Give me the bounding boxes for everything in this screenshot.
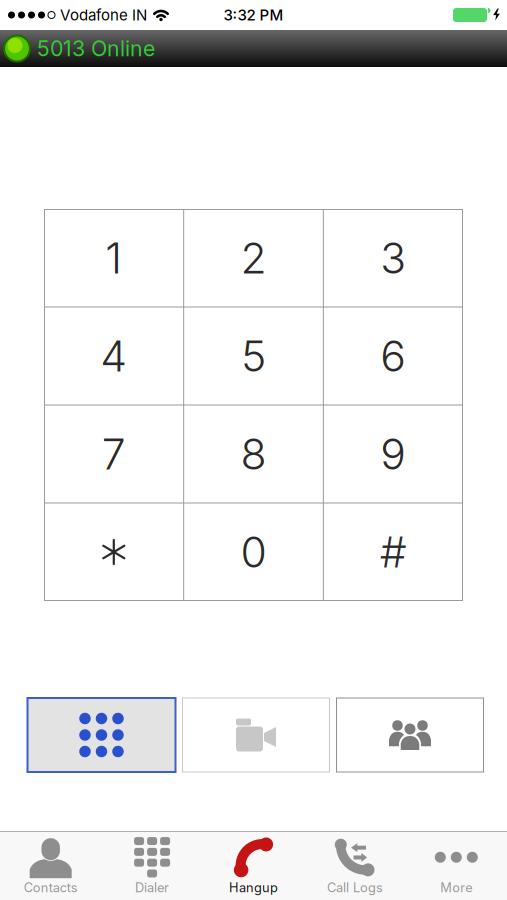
staticText: Hangup bbox=[229, 880, 278, 895]
staticText: 3:32 PM bbox=[223, 6, 283, 24]
button[interactable]: 9 bbox=[323, 405, 463, 503]
button[interactable]: 0 bbox=[184, 503, 323, 601]
staticText: 3 bbox=[380, 232, 406, 284]
button[interactable]: 8 bbox=[184, 405, 323, 503]
staticText: 1 bbox=[105, 232, 122, 284]
staticText: 2 bbox=[240, 232, 266, 284]
staticText: 9 bbox=[380, 428, 406, 480]
button[interactable]: Dialpad bbox=[27, 698, 175, 772]
staticText: Contacts bbox=[24, 880, 78, 895]
button[interactable]: Dialer bbox=[101, 832, 203, 900]
button[interactable]: Video call bbox=[182, 698, 329, 772]
button[interactable]: 6 bbox=[323, 307, 463, 405]
button[interactable]: 4 bbox=[44, 307, 184, 405]
button[interactable]: Contacts bbox=[0, 832, 101, 900]
staticText: 5 bbox=[241, 330, 266, 382]
button[interactable]: 3 bbox=[323, 209, 463, 307]
staticText: Call Logs bbox=[327, 880, 383, 895]
button[interactable]: 7 bbox=[44, 405, 184, 503]
button[interactable]: 5 bbox=[184, 307, 323, 405]
button[interactable]: # bbox=[323, 503, 463, 601]
staticText: Vodafone IN bbox=[60, 6, 147, 24]
staticText: # bbox=[380, 526, 407, 578]
button[interactable]: Call Logs bbox=[304, 832, 406, 900]
staticText: 8 bbox=[240, 428, 266, 480]
button[interactable]: Conference bbox=[336, 698, 483, 772]
staticText: 5013 Online bbox=[37, 36, 155, 61]
staticText: 0 bbox=[240, 526, 266, 578]
staticText: 6 bbox=[380, 330, 406, 382]
button[interactable]: 1 bbox=[44, 209, 184, 307]
button[interactable]: More bbox=[406, 832, 507, 900]
staticText: Dialer bbox=[135, 880, 169, 895]
staticText: 7 bbox=[102, 428, 126, 480]
button[interactable]: 2 bbox=[184, 209, 323, 307]
button[interactable]: Star bbox=[44, 503, 184, 601]
button[interactable]: Hangup bbox=[203, 832, 304, 900]
staticText: 4 bbox=[100, 330, 127, 382]
staticText: More bbox=[440, 880, 472, 895]
